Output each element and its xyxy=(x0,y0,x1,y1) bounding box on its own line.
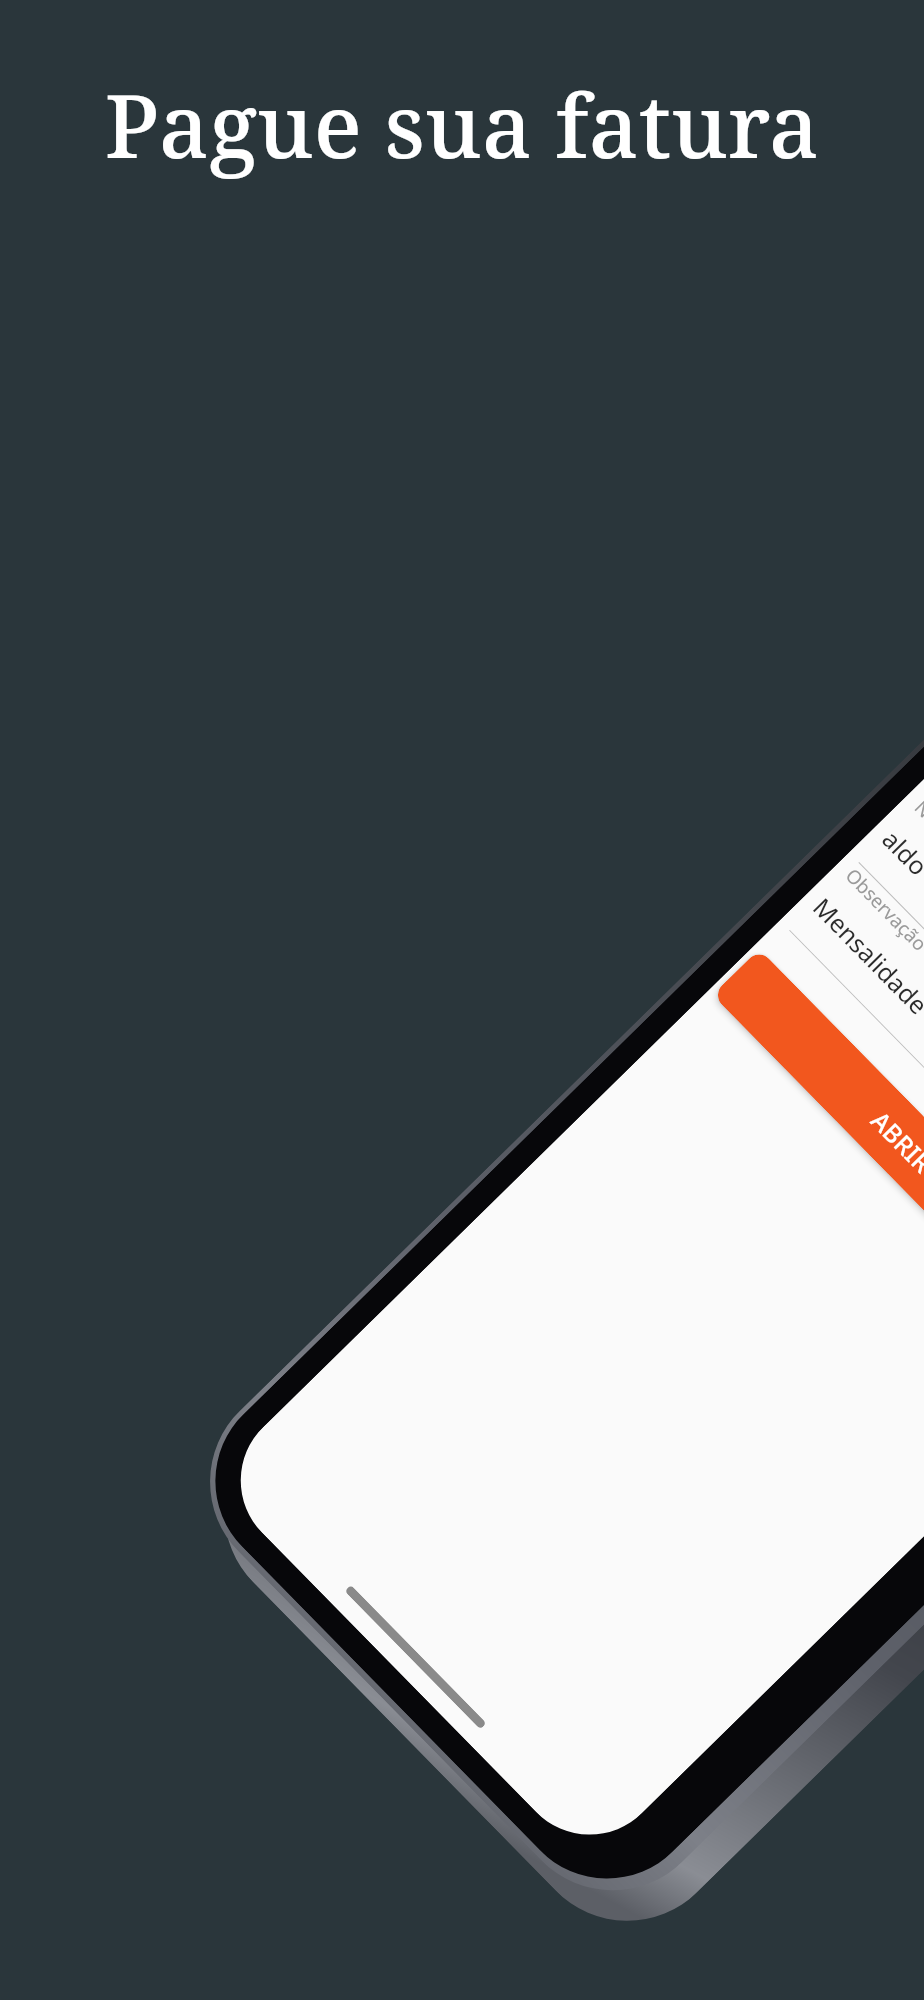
staticText: Pague sua fatura xyxy=(0,64,924,184)
staticText: Observação xyxy=(840,863,924,957)
staticText: aldo vieira xyxy=(875,822,924,933)
button[interactable]: ABRIR APP xyxy=(712,949,924,1373)
staticText: Mensalidade escola xyxy=(806,890,924,1079)
staticText: ABRIR APP xyxy=(864,1103,924,1218)
staticText: Nome xyxy=(909,795,924,852)
